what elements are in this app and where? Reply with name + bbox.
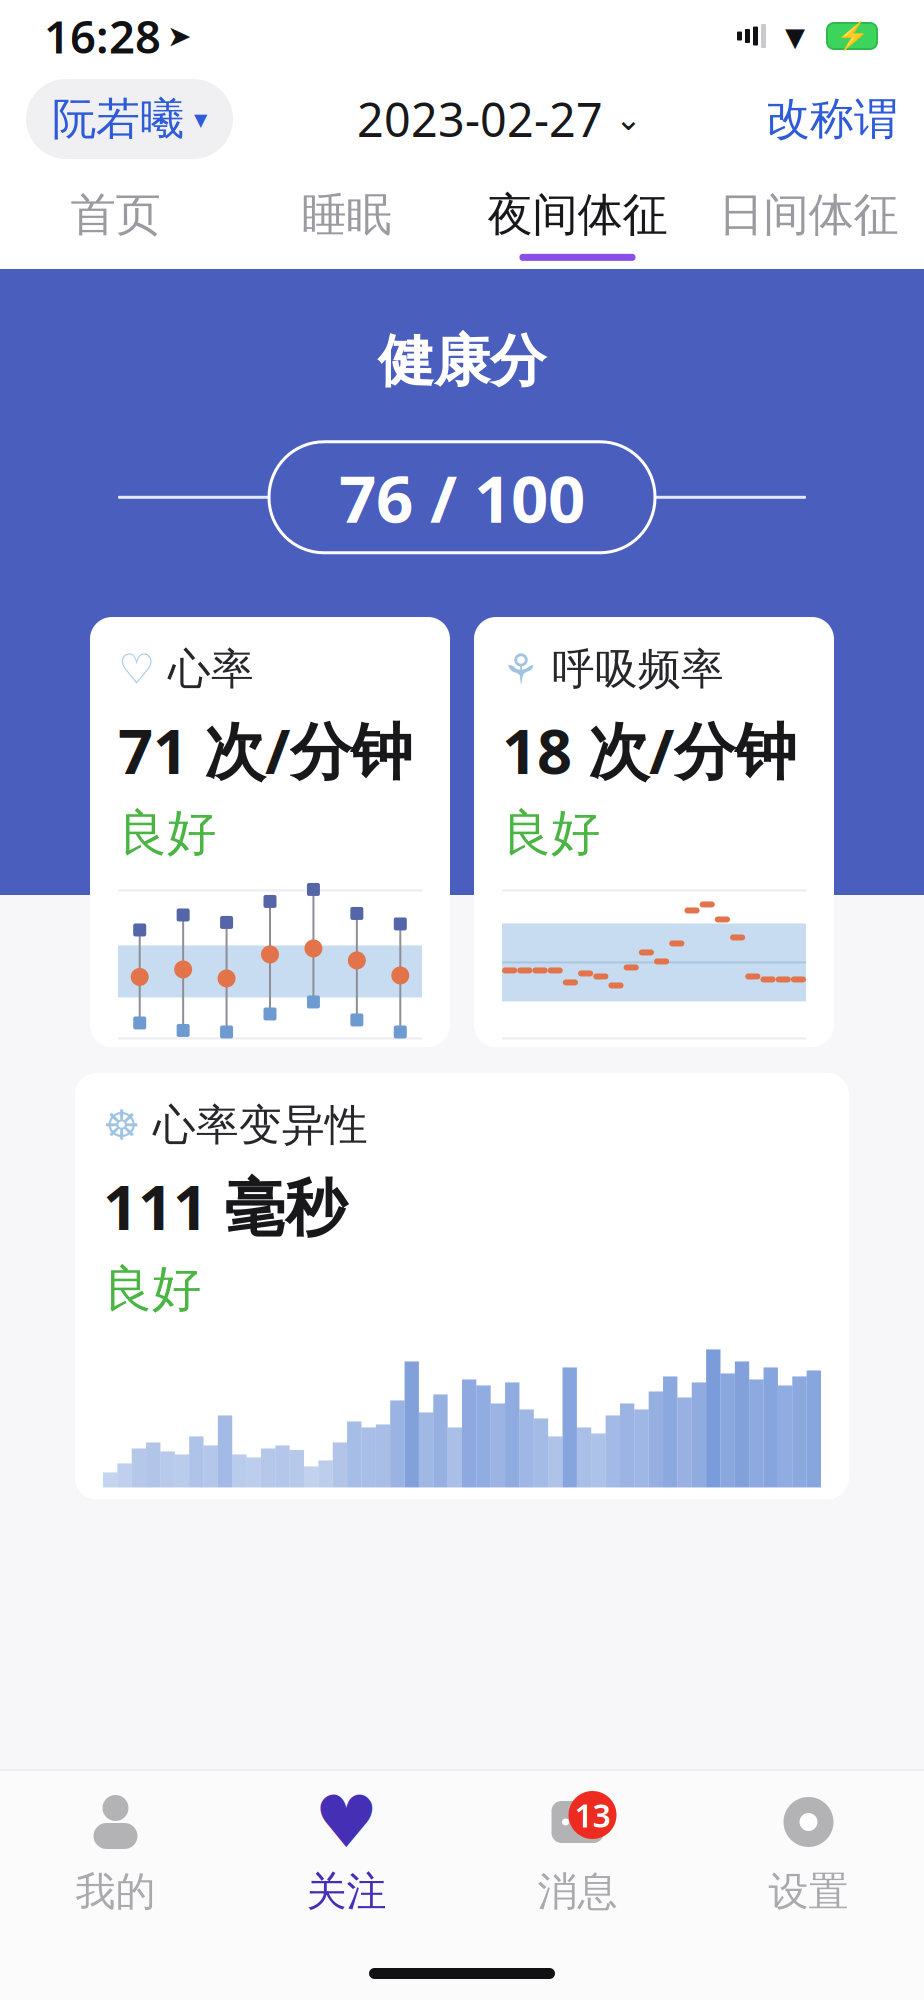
button[interactable]: 首页 [0, 173, 231, 261]
staticText: 日间体征 [718, 187, 898, 243]
button[interactable]: 13 [462, 1791, 693, 1916]
button[interactable]: 我的 [0, 1791, 231, 1916]
staticText: 76 / 100 [339, 454, 585, 541]
staticText: 消息 [537, 1867, 617, 1916]
staticText: 我的 [75, 1867, 155, 1916]
staticText: ➤ [167, 19, 192, 53]
button[interactable]: 设置 [693, 1791, 924, 1916]
staticText: ▾ [785, 13, 805, 59]
button[interactable]: 睡眠 [231, 173, 462, 261]
staticText: 设置 [768, 1867, 848, 1916]
staticText: 呼吸频率 [552, 643, 724, 695]
staticText: 18 次/分钟 [502, 709, 796, 791]
staticText: 71 次/分钟 [118, 709, 412, 791]
button[interactable]: 日间体征 [693, 173, 924, 261]
staticText: ⚘ [502, 646, 539, 693]
button[interactable]: 阮若曦 [26, 79, 233, 159]
button[interactable]: 夜间体征 [462, 173, 693, 261]
staticText: ♥ [314, 1781, 379, 1863]
staticText: ▾ [194, 104, 207, 134]
staticText: ⌄ [615, 101, 642, 137]
staticText: 心率 [168, 643, 254, 695]
staticText: 首页 [70, 187, 160, 243]
staticText: 2023-02-27 [357, 88, 603, 150]
staticText: 良好 [502, 803, 600, 863]
staticText: 健康分 [378, 327, 546, 396]
button[interactable]: 2023-02-27 [357, 88, 642, 150]
staticText: 改称谓 [766, 92, 898, 146]
staticText: 夜间体征 [487, 187, 667, 243]
button[interactable]: ♥ [231, 1791, 462, 1916]
staticText: 良好 [118, 803, 216, 863]
staticText: 16:28 [44, 6, 161, 66]
staticText: ⚡ [835, 21, 868, 51]
staticText: 睡眠 [301, 187, 391, 243]
staticText: ♡ [118, 646, 155, 693]
staticText: 心率变异性 [153, 1099, 368, 1151]
staticText: ☸ [103, 1102, 140, 1149]
staticText: 13 [574, 1794, 610, 1836]
button[interactable]: ☸ [75, 1073, 849, 1499]
button[interactable]: 改称谓 [766, 92, 898, 146]
staticText: 111 毫秒 [103, 1165, 346, 1247]
staticText: 关注 [306, 1867, 386, 1916]
staticText: 阮若曦 [52, 92, 184, 146]
button[interactable]: ⚘ [474, 617, 834, 1047]
staticText: 良好 [103, 1259, 201, 1319]
button[interactable]: ♡ [90, 617, 450, 1047]
